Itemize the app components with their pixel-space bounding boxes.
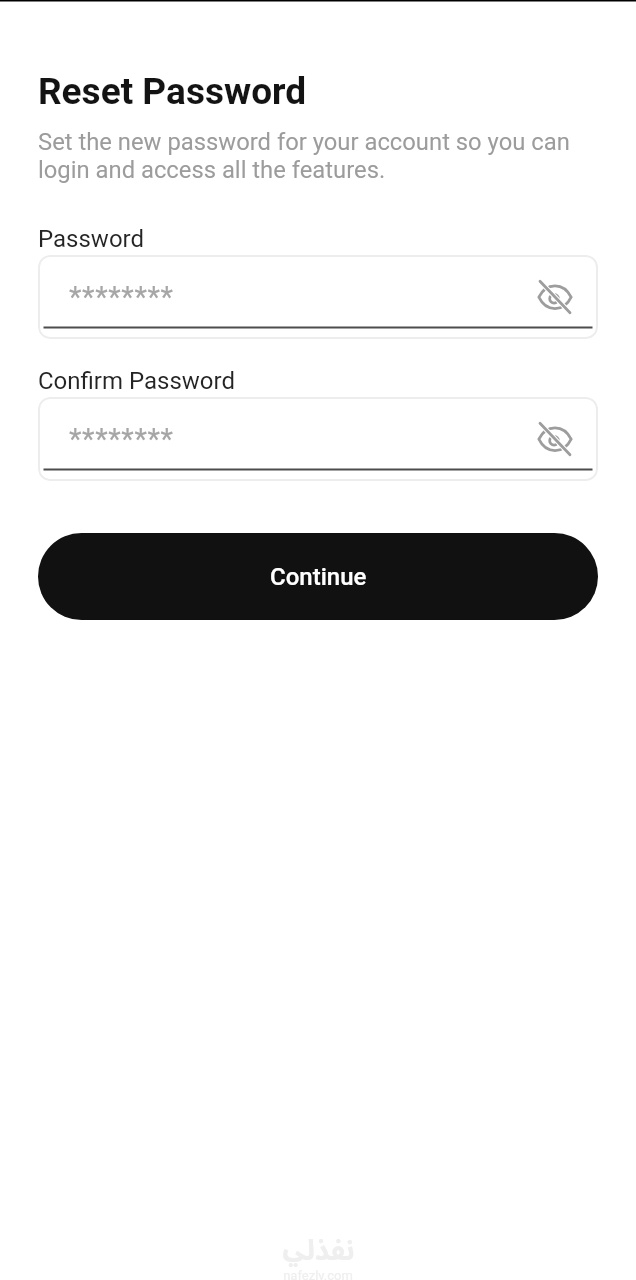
button[interactable]: ******** — [38, 255, 598, 339]
staticText: Password — [38, 225, 145, 253]
staticText: Confirm Password — [38, 367, 236, 395]
button[interactable]: Show password — [535, 277, 575, 317]
staticText: ******** — [69, 422, 535, 456]
staticText: نفذلي — [282, 1230, 355, 1268]
staticText: Reset Password — [38, 70, 307, 113]
button[interactable]: ******** — [38, 397, 598, 481]
button[interactable]: Show password — [535, 419, 575, 459]
button[interactable]: Continue — [38, 533, 598, 620]
staticText: Set the new password for your account so… — [38, 128, 598, 184]
staticText: nafezly.com — [283, 1268, 353, 1280]
staticText: Continue — [270, 563, 367, 591]
staticText: ******** — [69, 280, 535, 314]
